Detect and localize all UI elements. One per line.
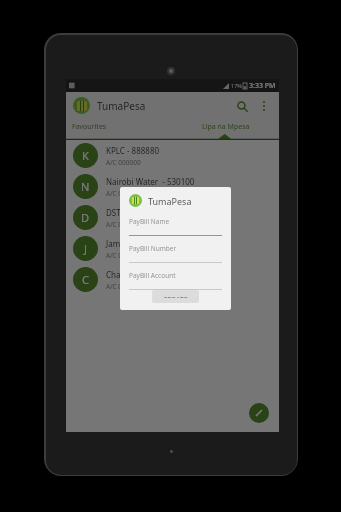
staticText: 17% — [231, 82, 242, 89]
staticText: A/C 000000 — [106, 158, 141, 167]
staticText: Favourites — [72, 122, 107, 132]
staticText: C — [82, 272, 89, 287]
button[interactable]: K — [66, 140, 279, 171]
staticText: 3:33 PM — [249, 81, 276, 91]
button[interactable]: CREATE — [152, 290, 199, 303]
button[interactable]: N — [66, 171, 279, 202]
staticText: Jamii Telecom - 220220 — [106, 238, 192, 249]
staticText: D — [81, 210, 90, 225]
staticText: Lipa na Mpesa — [202, 122, 250, 132]
staticText: PayBill Number — [129, 244, 177, 253]
staticText: PayBill Name — [129, 217, 170, 226]
staticText: N — [81, 179, 90, 194]
staticText: TumaPesa — [148, 195, 192, 207]
button[interactable]: More options — [254, 96, 274, 116]
staticText: PayBill Account — [129, 271, 176, 280]
button[interactable]: D — [66, 202, 279, 233]
staticText: A/C 000000 — [106, 189, 141, 198]
button[interactable]: Create new — [249, 403, 269, 423]
staticText: A/C 000000 — [106, 251, 141, 260]
staticText: A/C 000000 — [106, 220, 141, 229]
staticText: KPLC - 888880 — [106, 145, 160, 156]
staticText: J — [84, 241, 88, 256]
staticText: Nairobi Water - 530100 — [106, 176, 195, 187]
button[interactable]: J — [66, 233, 279, 264]
button[interactable]: Lipa na Mpesa — [172, 119, 279, 134]
button[interactable]: Search — [232, 96, 252, 116]
staticText: CREATE — [163, 295, 188, 298]
staticText: Chama - 110110 — [106, 269, 167, 280]
staticText: A/C 000000 — [106, 282, 141, 291]
button[interactable]: C — [66, 264, 279, 295]
staticText: DSTV - 444900 — [106, 207, 160, 218]
button[interactable]: Favourites — [66, 119, 172, 134]
staticText: K — [82, 148, 89, 163]
staticText: TumaPesa — [97, 99, 146, 113]
